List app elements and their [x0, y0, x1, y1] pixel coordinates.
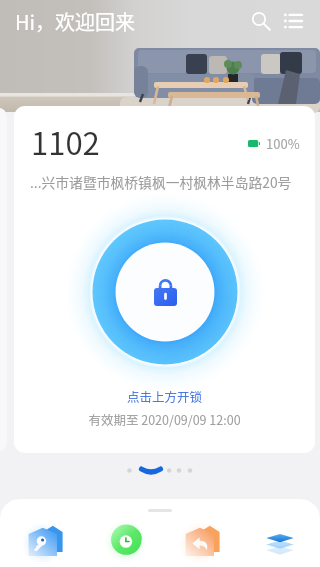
- button[interactable]: Key: [22, 519, 70, 563]
- staticText: Hi，欢迎回来: [15, 7, 136, 36]
- staticText: 有效期至 2020/09/09 12:00: [14, 410, 315, 428]
- button[interactable]: Search: [246, 6, 276, 36]
- staticText: 1102: [31, 119, 100, 164]
- button[interactable]: Layers: [256, 519, 304, 563]
- button[interactable]: Share: [179, 519, 227, 563]
- staticText: 100%: [266, 134, 300, 153]
- staticText: ...兴市诸暨市枫桥镇枫一村枫林半岛路20号: [30, 172, 292, 192]
- button[interactable]: Menu: [278, 6, 308, 36]
- button[interactable]: History: [104, 519, 152, 563]
- button[interactable]: 1102: [14, 106, 315, 453]
- staticText: 点击上方开锁: [14, 387, 315, 405]
- button[interactable]: Unlock: [65, 192, 265, 392]
